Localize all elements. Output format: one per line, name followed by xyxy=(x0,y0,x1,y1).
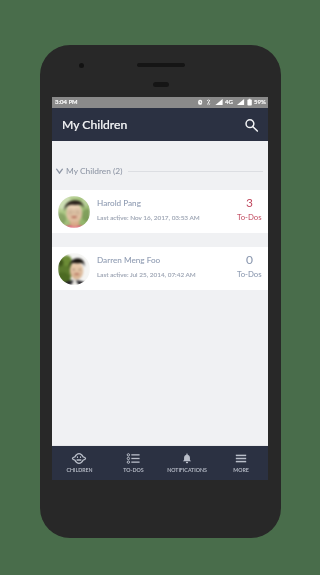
staticText: MORE xyxy=(233,467,249,473)
staticText: To-Dos xyxy=(237,269,262,278)
staticText: 59% xyxy=(254,98,266,105)
button[interactable]: Darren Meng Foo xyxy=(52,247,268,290)
staticText: 4G xyxy=(225,98,233,105)
button[interactable]: TO-DOS xyxy=(106,446,160,480)
button[interactable]: NOTIFICATIONS xyxy=(160,446,214,480)
staticText: NOTIFICATIONS xyxy=(167,467,207,473)
button[interactable]: My Children (2) xyxy=(52,141,268,190)
staticText: 3 xyxy=(246,195,253,209)
staticText: To-Dos xyxy=(237,212,262,221)
staticText: Last active: Nov 16, 2017, 03:53 AM xyxy=(97,214,200,222)
staticText: CHILDREN xyxy=(66,467,93,473)
button[interactable]: Harold Pang xyxy=(52,190,268,233)
staticText: 0 xyxy=(246,252,253,266)
staticText: 3:04 PM xyxy=(55,98,78,105)
staticText: Darren Meng Foo xyxy=(97,255,161,265)
staticText: Last active: Jul 25, 2014, 07:42 AM xyxy=(97,271,196,279)
button[interactable]: CHILDREN xyxy=(52,446,106,480)
staticText: Harold Pang xyxy=(97,198,141,208)
staticText: TO-DOS xyxy=(123,467,144,473)
staticText: My Children (2) xyxy=(66,166,123,176)
button[interactable]: Search xyxy=(241,115,261,135)
staticText: My Children xyxy=(62,117,128,132)
button[interactable]: MORE xyxy=(214,446,268,480)
